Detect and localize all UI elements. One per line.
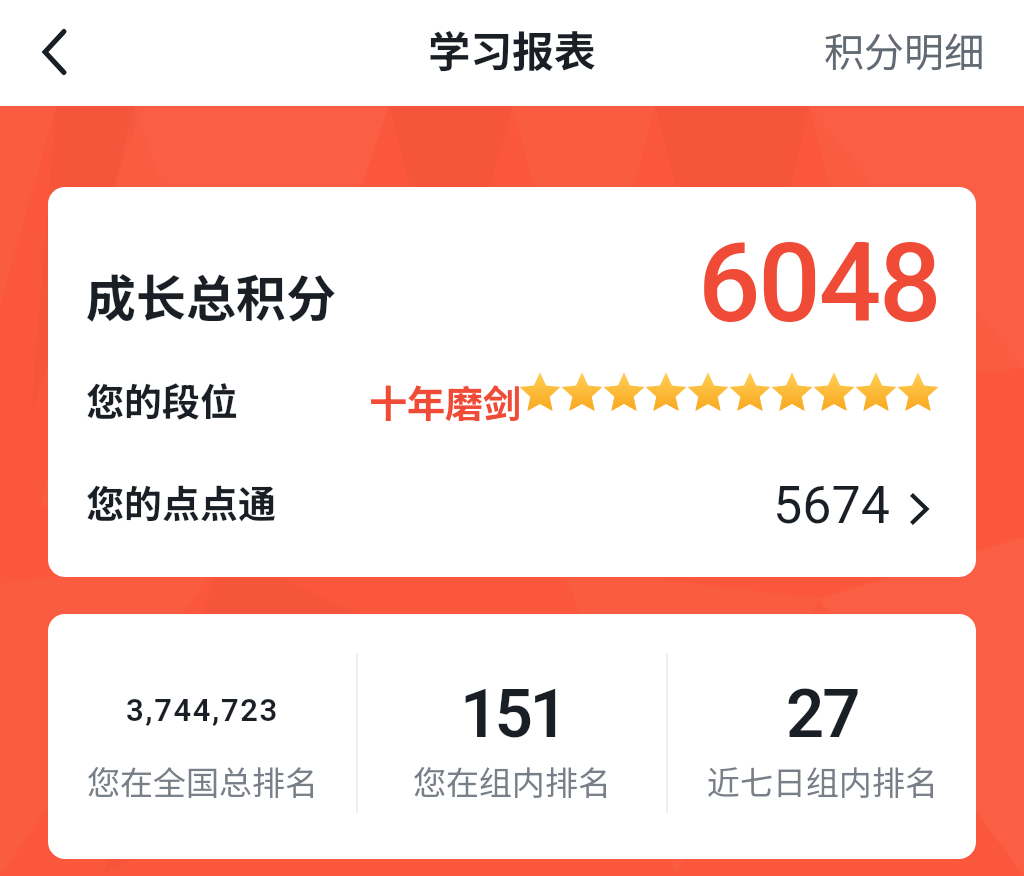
staticText: 您在组内排名 — [413, 757, 611, 805]
staticText: 27 — [786, 675, 859, 754]
staticText: 积分明细 — [824, 21, 984, 79]
staticText: 您的段位 — [86, 372, 239, 427]
staticText: 十年磨剑 — [369, 374, 522, 429]
staticText: 近七日组内排名 — [707, 757, 938, 805]
staticText: 3,744,723 — [126, 692, 279, 728]
staticText: 成长总积分 — [86, 259, 336, 331]
staticText: 6048 — [698, 219, 940, 348]
staticText: 您在全国总排名 — [87, 757, 318, 805]
staticText: 151 — [460, 675, 565, 754]
staticText: 您的点点通 — [86, 474, 277, 529]
button[interactable]: 27 — [668, 614, 976, 859]
button[interactable]: 积分明细 — [782, 8, 1024, 98]
button[interactable]: 您的点点通 — [48, 451, 976, 551]
staticText: 5674 — [773, 475, 890, 536]
button[interactable]: Back — [22, 21, 86, 85]
staticText: 学习报表 — [428, 18, 597, 79]
button[interactable]: 3,744,723 — [48, 614, 356, 859]
button[interactable]: 151 — [358, 614, 666, 859]
other: Open 点点通 detail — [910, 492, 930, 526]
